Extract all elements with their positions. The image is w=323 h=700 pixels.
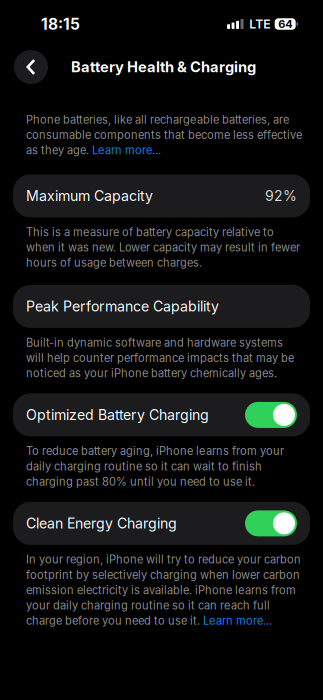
staticText: Battery Health & Charging: [71, 58, 256, 76]
staticText: 18:15: [41, 15, 80, 33]
staticText: LTE: [249, 17, 270, 31]
button[interactable]: Optimized Battery Charging: [0, 393, 323, 436]
staticText: Phone batteries, like all rechargeable b…: [26, 113, 302, 157]
staticText: Optimized Battery Charging: [26, 406, 209, 423]
staticText: Peak Performance Capability: [26, 298, 219, 315]
staticText: Clean Energy Charging: [26, 515, 177, 532]
staticText: Built-in dynamic software and hardware s…: [26, 336, 294, 380]
button[interactable]: Maximum Capacity: [0, 174, 323, 217]
staticText: This is a measure of battery capacity re…: [26, 225, 300, 269]
button[interactable]: Clean Energy Charging: [0, 502, 323, 545]
staticText: In your region, iPhone will try to reduc…: [26, 553, 301, 627]
staticText: To reduce battery aging, iPhone learns f…: [26, 444, 284, 488]
button[interactable]: Back: [11, 47, 51, 87]
staticText: Maximum Capacity: [26, 187, 153, 204]
staticText: 64: [278, 17, 292, 31]
staticText: 92%: [265, 187, 297, 204]
button[interactable]: Peak Performance Capability: [0, 285, 323, 328]
